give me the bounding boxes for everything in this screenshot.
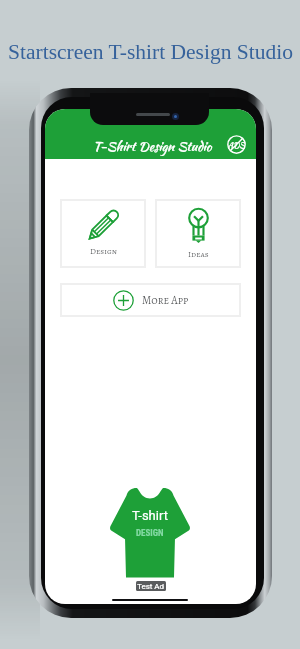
button[interactable]: Ideas	[156, 200, 240, 267]
staticText: T-shirt	[132, 508, 168, 523]
button[interactable]: Design	[61, 200, 145, 267]
staticText: Ideas	[188, 248, 209, 260]
button[interactable]: More App	[61, 284, 240, 316]
staticText: T-Shirt Design Studio	[93, 137, 212, 156]
button[interactable]: Remove ads	[227, 135, 246, 154]
staticText: Startscreen T-shirt Design Studio	[8, 40, 293, 64]
staticText: Test Ad	[137, 582, 165, 591]
staticText: More App	[142, 293, 189, 308]
staticText: DESIGN	[136, 528, 164, 539]
staticText: Design	[90, 245, 117, 257]
staticText: ADS	[228, 139, 245, 151]
